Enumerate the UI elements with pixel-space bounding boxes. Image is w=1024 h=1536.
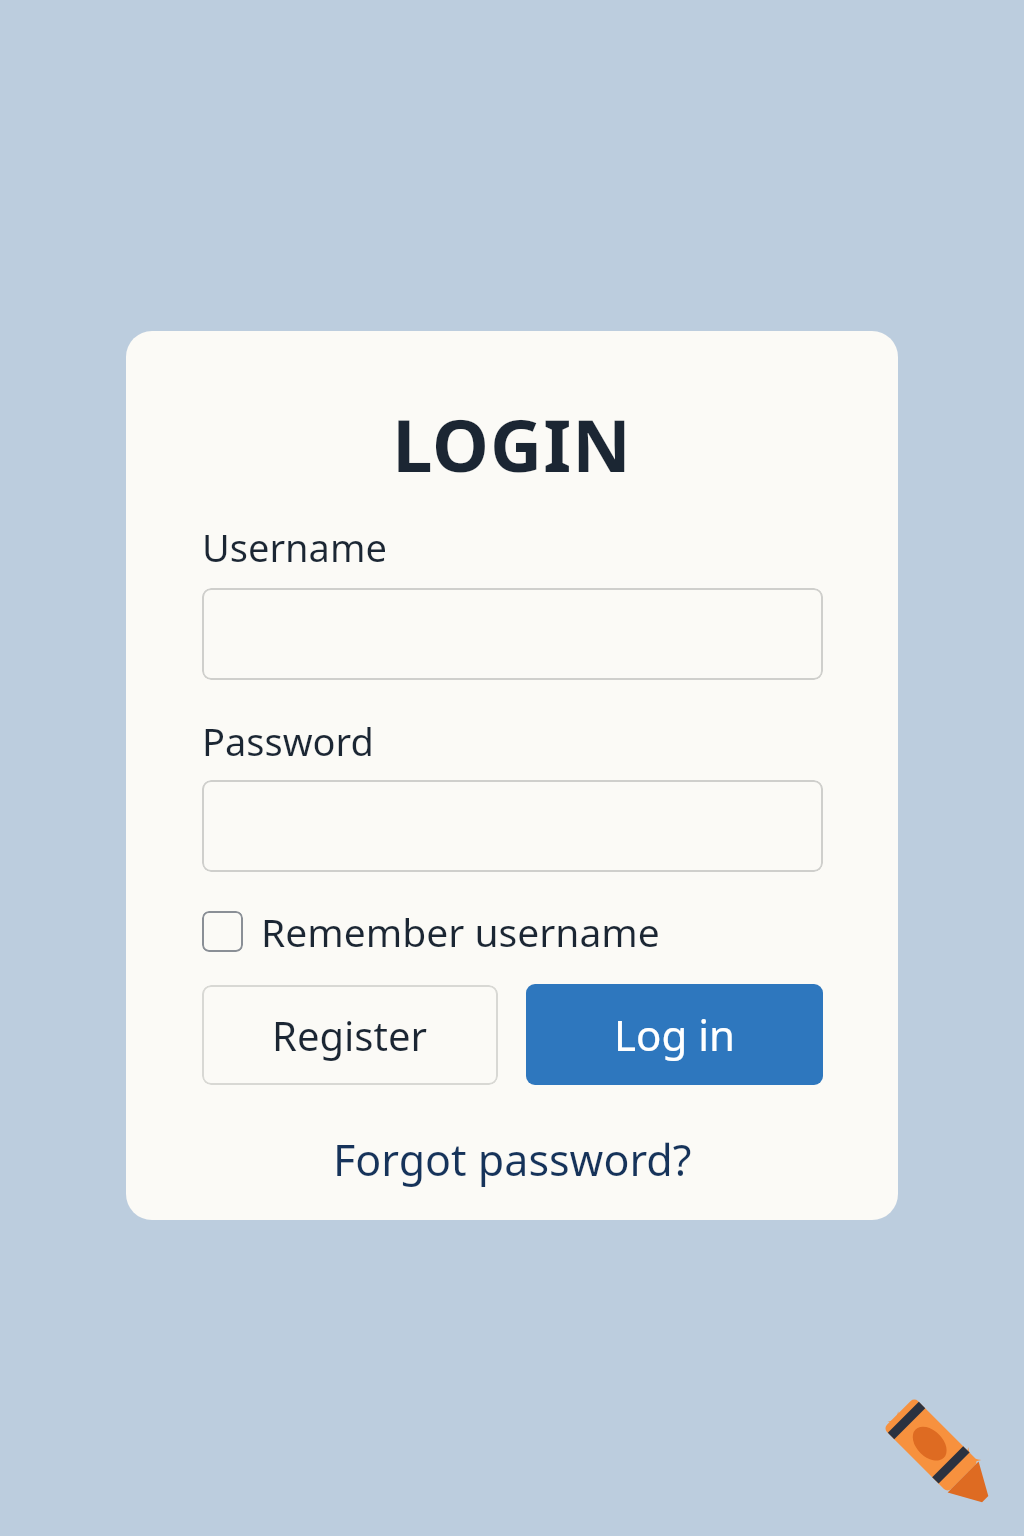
button[interactable]: Password input field — [202, 780, 823, 872]
button[interactable]: Username input field — [202, 588, 823, 680]
staticText: Log in — [614, 1006, 735, 1063]
button[interactable]: Register — [202, 985, 498, 1085]
staticText: Username — [202, 521, 387, 573]
button[interactable]: Log in — [526, 984, 823, 1085]
staticText: Remember username — [261, 905, 660, 958]
button[interactable]: Forgot password? — [325, 1126, 700, 1193]
staticText: Password — [202, 715, 374, 767]
button[interactable]: Remember username — [202, 903, 660, 959]
staticText: Register — [272, 1008, 428, 1062]
staticText: LOGIN — [126, 395, 898, 493]
